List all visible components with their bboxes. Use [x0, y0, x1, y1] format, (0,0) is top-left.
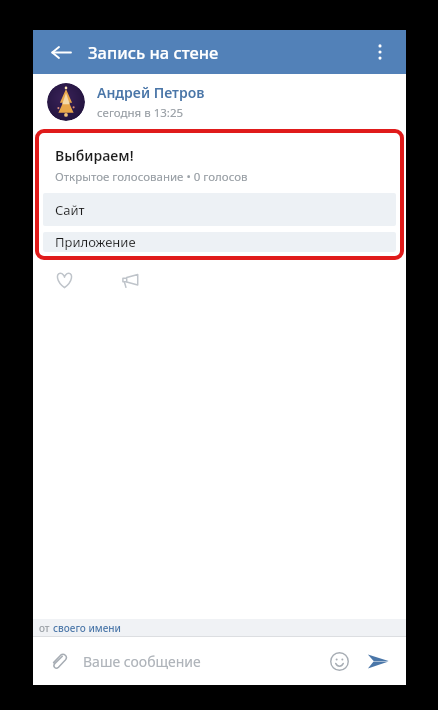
staticText: сегодня в 13:25	[97, 105, 184, 121]
button[interactable]: More options	[360, 32, 400, 72]
staticText: Выбираем!	[55, 146, 134, 165]
staticText: Сайт	[55, 201, 85, 219]
staticText: Андрей Петров	[97, 83, 205, 102]
button[interactable]: Emoji	[320, 642, 358, 680]
staticText: Приложение	[55, 233, 136, 251]
button[interactable]: Share	[113, 263, 147, 297]
staticText: Открытое голосование • 0 голосов	[55, 169, 248, 185]
staticText: от	[39, 621, 53, 635]
button[interactable]: Андрей Петров	[33, 74, 406, 130]
button[interactable]: Приложение	[43, 232, 396, 252]
button[interactable]: Send	[358, 641, 398, 681]
staticText: Ваше сообщение	[83, 652, 320, 671]
button[interactable]: Like	[47, 263, 81, 297]
button[interactable]: Back	[41, 32, 81, 72]
button[interactable]: от	[33, 619, 406, 636]
staticText: своего имени	[53, 621, 121, 635]
button[interactable]: Attach	[39, 642, 77, 680]
staticText: Запись на стене	[88, 41, 219, 63]
button[interactable]: Сайт	[43, 193, 396, 226]
